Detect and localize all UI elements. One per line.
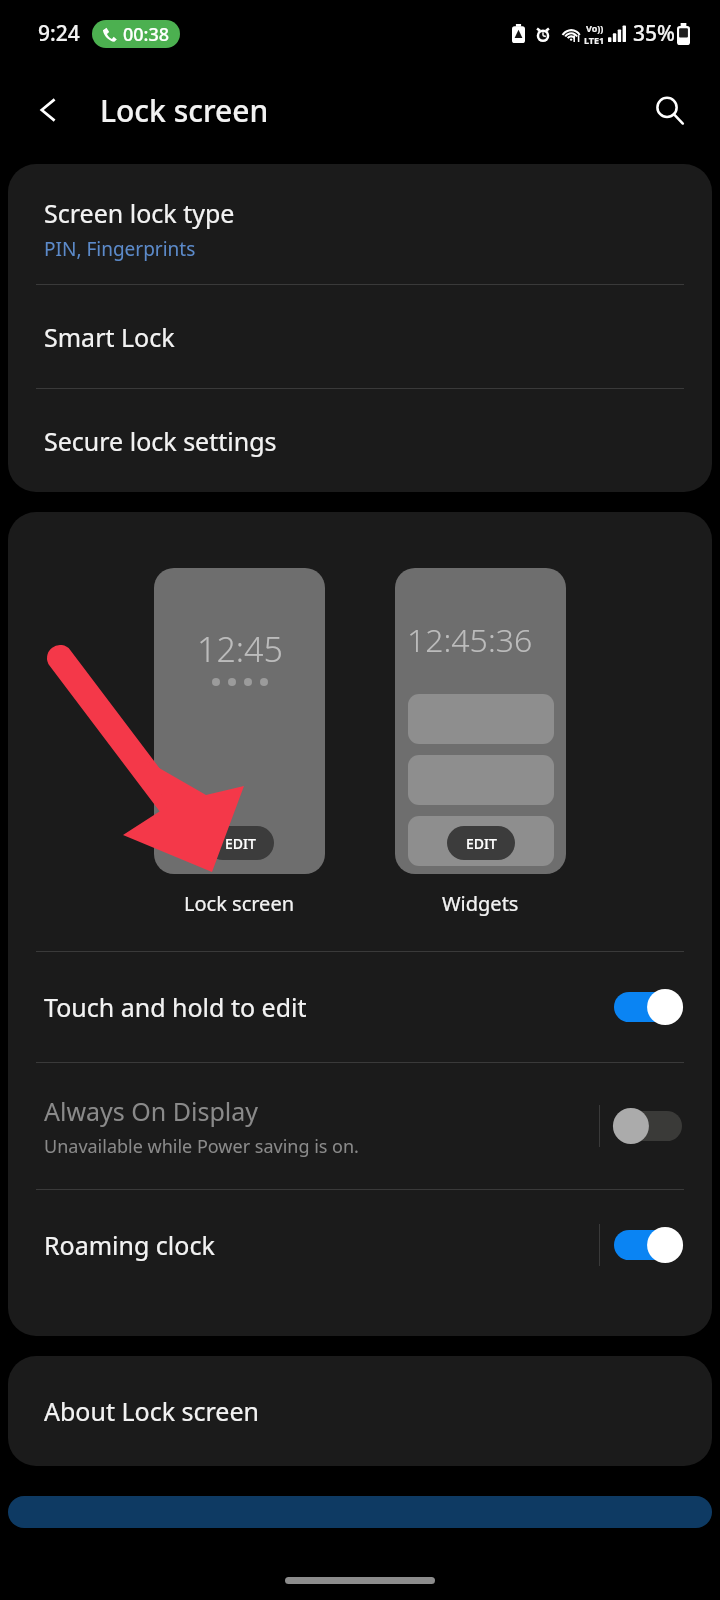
button[interactable]: Roaming clock <box>612 1221 684 1269</box>
button[interactable]: Always On Display <box>8 1063 712 1189</box>
staticText: Widgets <box>442 890 519 917</box>
button[interactable]: Screen lock type <box>8 164 712 284</box>
staticText: 00:38 <box>123 22 170 47</box>
button[interactable]: Ongoing call <box>92 20 180 48</box>
staticText: Roaming clock <box>44 1228 215 1262</box>
staticText: EDIT <box>466 834 497 853</box>
staticText: About Lock screen <box>44 1394 259 1428</box>
button[interactable]: Back <box>20 81 78 139</box>
button[interactable]: Smart Lock <box>8 285 712 388</box>
staticText: Unavailable while Power saving is on. <box>44 1134 359 1159</box>
staticText: PIN, Fingerprints <box>44 236 196 262</box>
staticText: Screen lock type <box>44 196 235 230</box>
button[interactable]: Touch and hold to edit <box>612 983 684 1031</box>
button[interactable]: EDIT <box>447 826 515 860</box>
button[interactable]: Roaming clock <box>8 1190 712 1300</box>
staticText: LTE1 <box>584 34 605 46</box>
staticText: Smart Lock <box>44 320 175 354</box>
button[interactable]: 12:45:36 <box>395 568 566 874</box>
staticText: Lock screen <box>184 890 295 917</box>
button[interactable]: About Lock screen <box>8 1356 712 1466</box>
staticText: Always On Display <box>44 1094 259 1128</box>
staticText: 35% <box>633 19 675 48</box>
staticText: Lock screen <box>100 90 269 131</box>
button[interactable]: Touch and hold to edit <box>8 952 712 1062</box>
staticText: Vo)) <box>586 22 604 34</box>
button[interactable] <box>8 1496 712 1528</box>
staticText: 12:45:36 <box>407 618 533 662</box>
button[interactable]: EDIT <box>206 826 274 860</box>
other: Ongoing call <box>102 27 117 42</box>
staticText: Secure lock settings <box>44 424 277 458</box>
staticText: Touch and hold to edit <box>44 990 307 1024</box>
button[interactable]: Secure lock settings <box>8 389 712 492</box>
staticText: 9:24 <box>38 19 80 48</box>
staticText: 12:45 <box>197 626 283 672</box>
button[interactable]: Always On Display <box>612 1102 684 1150</box>
staticText: EDIT <box>225 834 256 853</box>
button[interactable]: 12:45 <box>154 568 325 874</box>
button[interactable]: Search <box>640 81 698 139</box>
